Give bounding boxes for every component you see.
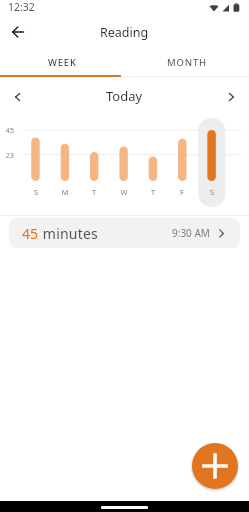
staticText: Today — [106, 87, 143, 105]
staticText: 45 — [22, 224, 39, 243]
staticText: Reading — [100, 24, 149, 41]
staticText: minutes — [39, 224, 98, 243]
staticText: MONTH — [167, 56, 207, 69]
staticText: 45 — [0, 125, 14, 135]
staticText: 23 — [0, 150, 14, 160]
button[interactable]: MONTH — [124, 48, 249, 77]
staticText: 12:32 — [8, 0, 35, 14]
button[interactable]: WEEK — [0, 48, 124, 77]
staticText: T — [84, 187, 104, 197]
staticText: F — [172, 187, 192, 197]
staticText: S — [26, 187, 46, 197]
button[interactable] — [10, 89, 26, 105]
button[interactable]: 45 — [9, 218, 240, 248]
staticText: W — [114, 187, 134, 197]
staticText: S — [202, 187, 222, 197]
staticText: 9:30 AM — [172, 226, 210, 240]
staticText: WEEK — [48, 56, 77, 69]
button[interactable] — [223, 89, 239, 105]
staticText: T — [143, 187, 163, 197]
staticText: M — [55, 187, 75, 197]
button[interactable] — [192, 443, 238, 489]
button[interactable] — [6, 20, 30, 44]
